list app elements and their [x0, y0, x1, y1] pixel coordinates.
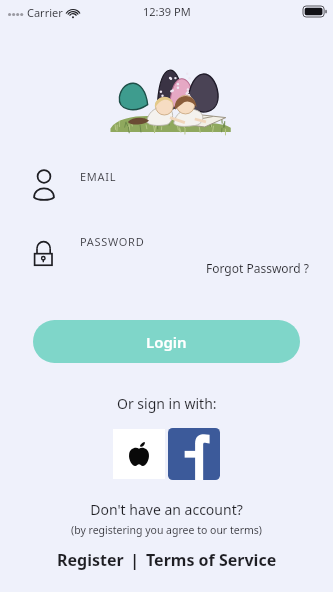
button[interactable]: Login	[33, 320, 300, 363]
staticText: Login	[146, 332, 187, 352]
other: Email account	[28, 166, 60, 202]
staticText: Terms of Service	[146, 549, 277, 571]
staticText: Carrier	[27, 5, 63, 20]
button[interactable]: Forgot Password ?	[203, 258, 313, 278]
staticText: PASSWORD	[80, 234, 145, 249]
button[interactable]: Register	[55, 549, 126, 571]
staticText: EMAIL	[80, 169, 117, 184]
staticText: Forgot Password ?	[206, 260, 310, 276]
staticText: |	[126, 549, 144, 571]
staticText: (by registering you agree to our terms)	[71, 523, 262, 537]
other: Password lock	[28, 236, 58, 270]
button[interactable]	[80, 251, 295, 269]
button[interactable]: Terms of Service	[144, 549, 279, 571]
staticText: Don't have an account?	[90, 500, 243, 519]
button[interactable]: Sign in with Facebook	[168, 428, 220, 480]
staticText: 12:39 PM	[143, 4, 191, 19]
staticText: Register	[57, 549, 124, 571]
staticText: Or sign in with:	[117, 394, 217, 413]
button[interactable]: Sign in with Apple	[113, 429, 165, 479]
